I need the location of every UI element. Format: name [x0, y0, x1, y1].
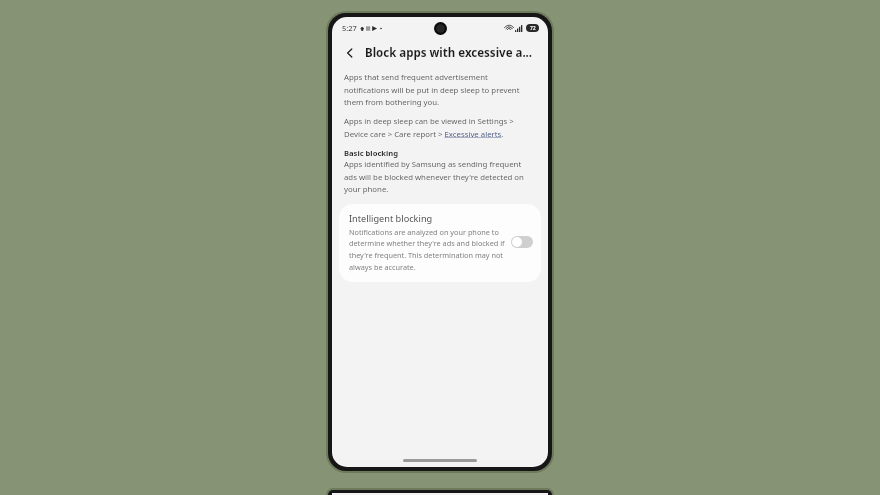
button[interactable]: Back — [340, 43, 360, 63]
staticText: 5:27 — [342, 23, 357, 33]
button[interactable]: Intelligent blocking — [339, 204, 541, 282]
button[interactable]: Intelligent blocking toggle — [511, 236, 533, 248]
staticText: Apps that send frequent advertisement no… — [344, 72, 534, 107]
staticText: 72 — [530, 25, 536, 32]
staticText: Notifications are analyzed on your phone… — [349, 227, 505, 272]
staticText: Basic blocking — [344, 148, 399, 158]
staticText: Block apps with excessive a... — [365, 45, 533, 61]
staticText: Intelligent blocking — [349, 212, 433, 225]
staticText: Apps identified by Samsung as sending fr… — [344, 159, 534, 194]
staticText: Apps in deep sleep can be viewed in Sett… — [344, 116, 534, 139]
